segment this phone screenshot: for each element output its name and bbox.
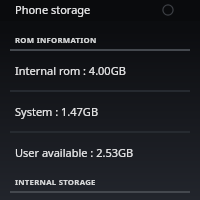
staticText: ROM INFORMATION [15, 35, 97, 46]
staticText: INTERNAL STORAGE [15, 177, 96, 188]
staticText: User available : 2.53GB [15, 145, 134, 160]
button[interactable]: Refresh [158, 0, 178, 19]
staticText: System : 1.47GB [15, 104, 99, 119]
button[interactable]: Internal rom : 4.00GB [0, 50, 200, 91]
staticText: Internal rom : 4.00GB [15, 63, 126, 78]
button[interactable]: System : 1.47GB [0, 91, 200, 132]
button[interactable]: User available : 2.53GB [0, 132, 200, 173]
staticText: Phone storage [15, 2, 91, 17]
